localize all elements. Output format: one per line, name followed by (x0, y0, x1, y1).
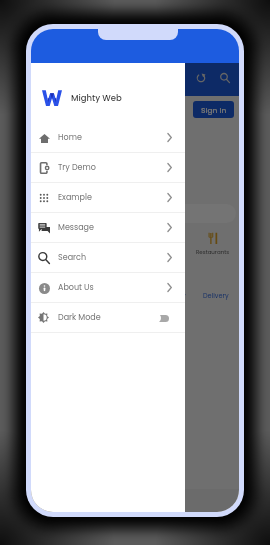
staticText: Pharmacy (147, 248, 176, 256)
button[interactable]: Dark Mode (31, 303, 185, 332)
staticText: Search (58, 252, 87, 263)
button[interactable]: Search (31, 243, 185, 272)
button[interactable]: Groceries (35, 231, 79, 256)
button[interactable]: Sign in (193, 101, 234, 118)
staticText: Groceries (44, 248, 71, 256)
button[interactable]: Refresh (191, 68, 211, 88)
button[interactable]: About Us (31, 273, 185, 302)
staticText: Sign in (201, 105, 227, 115)
staticText: Try Demo (58, 162, 96, 173)
button[interactable]: Dark mode toggle (151, 313, 170, 323)
button[interactable]: Shopping (87, 231, 131, 256)
button[interactable]: Search field (42, 204, 236, 223)
button[interactable]: Message (31, 213, 185, 242)
staticText: Restaurants (196, 248, 230, 256)
staticText: Message (58, 222, 94, 233)
button[interactable]: Search (215, 68, 235, 88)
staticText: Delivery (203, 291, 229, 300)
staticText: Home (58, 132, 82, 143)
staticText: Food (39, 291, 55, 300)
staticText: Dark Mode (58, 312, 101, 323)
staticText: Grocery (160, 291, 186, 300)
button[interactable]: Pharmacy (139, 231, 183, 256)
button[interactable]: Home (31, 123, 185, 152)
staticText: About Us (58, 282, 94, 293)
button[interactable]: Example (31, 183, 185, 212)
staticText: Mighty Web (71, 92, 122, 104)
button[interactable]: Restaurants (191, 231, 235, 256)
button[interactable]: Try Demo (31, 153, 185, 182)
staticText: Example (58, 192, 92, 203)
